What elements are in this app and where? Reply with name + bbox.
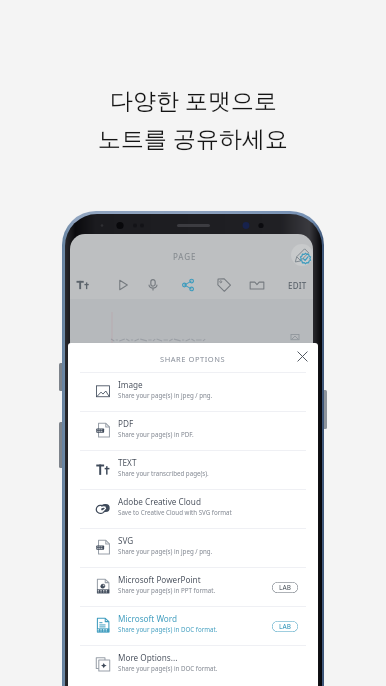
button[interactable]: tool (248, 276, 266, 294)
staticText: Share your page(s) in PDF. (118, 430, 194, 438)
button[interactable]: EDIT (288, 280, 307, 291)
button[interactable]: tool (74, 276, 92, 294)
staticText: Save to Creative Cloud with SVG format (118, 508, 232, 516)
button[interactable]: Adobe Creative Cloud (68, 490, 318, 528)
staticText: PDF (118, 418, 134, 429)
staticText: Share your transcribed page(s). (118, 469, 209, 477)
button[interactable]: tool (179, 276, 197, 294)
staticText: LAB (279, 622, 291, 631)
button[interactable]: tool (215, 276, 233, 294)
staticText: 다양한 포맷으로 (110, 84, 277, 115)
button[interactable]: Close (295, 349, 310, 364)
staticText: Microsoft Word (118, 613, 178, 624)
staticText: TEXT (118, 457, 137, 468)
staticText: Share your page(s) in jpeg / png. (118, 391, 213, 399)
button[interactable]: TEXT (68, 451, 318, 489)
staticText: SHARE OPTIONS (160, 354, 226, 364)
staticText: Microsoft PowerPoint (118, 574, 201, 585)
button[interactable]: Microsoft Word (68, 607, 318, 645)
button[interactable]: PDF (68, 412, 318, 450)
button[interactable]: More Options... (68, 646, 318, 684)
staticText: Image (118, 379, 143, 390)
staticText: EDIT (288, 280, 307, 291)
button[interactable]: Verified edit (291, 244, 313, 266)
staticText: LAB (279, 583, 291, 592)
button[interactable]: Image (68, 373, 318, 411)
button[interactable]: Microsoft PowerPoint (68, 568, 318, 606)
button[interactable]: tool (144, 276, 162, 294)
staticText: Share your page(s) in DOC format. (118, 625, 218, 633)
staticText: Share your page(s) in PPT format. (118, 586, 216, 594)
button[interactable]: SVG (68, 529, 318, 567)
staticText: More Options... (118, 652, 178, 663)
staticText: 노트를 공유하세요 (98, 122, 288, 153)
staticText: SVG (118, 535, 134, 546)
staticText: Share your page(s) in DOC format. (118, 664, 218, 672)
staticText: PAGE (173, 251, 197, 262)
button[interactable]: tool (114, 276, 132, 294)
staticText: Adobe Creative Cloud (118, 496, 201, 507)
staticText: Share your page(s) in jpeg / png. (118, 547, 213, 555)
